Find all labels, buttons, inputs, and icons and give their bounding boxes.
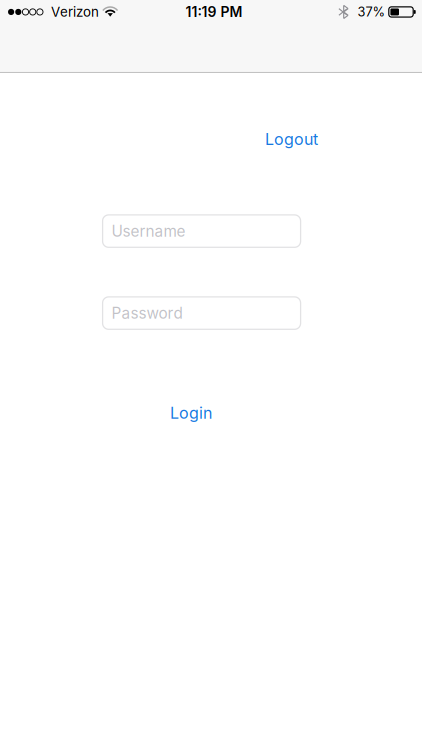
button[interactable]: Login [166,400,216,426]
button[interactable]: Logout [261,126,322,152]
staticText: 37% [357,4,385,20]
staticText: 11:19 PM [185,3,242,20]
staticText: Password [112,304,183,322]
button[interactable]: Password [103,297,301,329]
staticText: Username [112,222,186,240]
button[interactable]: Username [103,215,301,247]
staticText: Logout [265,129,318,149]
staticText: Verizon [51,4,99,20]
staticText: Login [170,403,212,423]
